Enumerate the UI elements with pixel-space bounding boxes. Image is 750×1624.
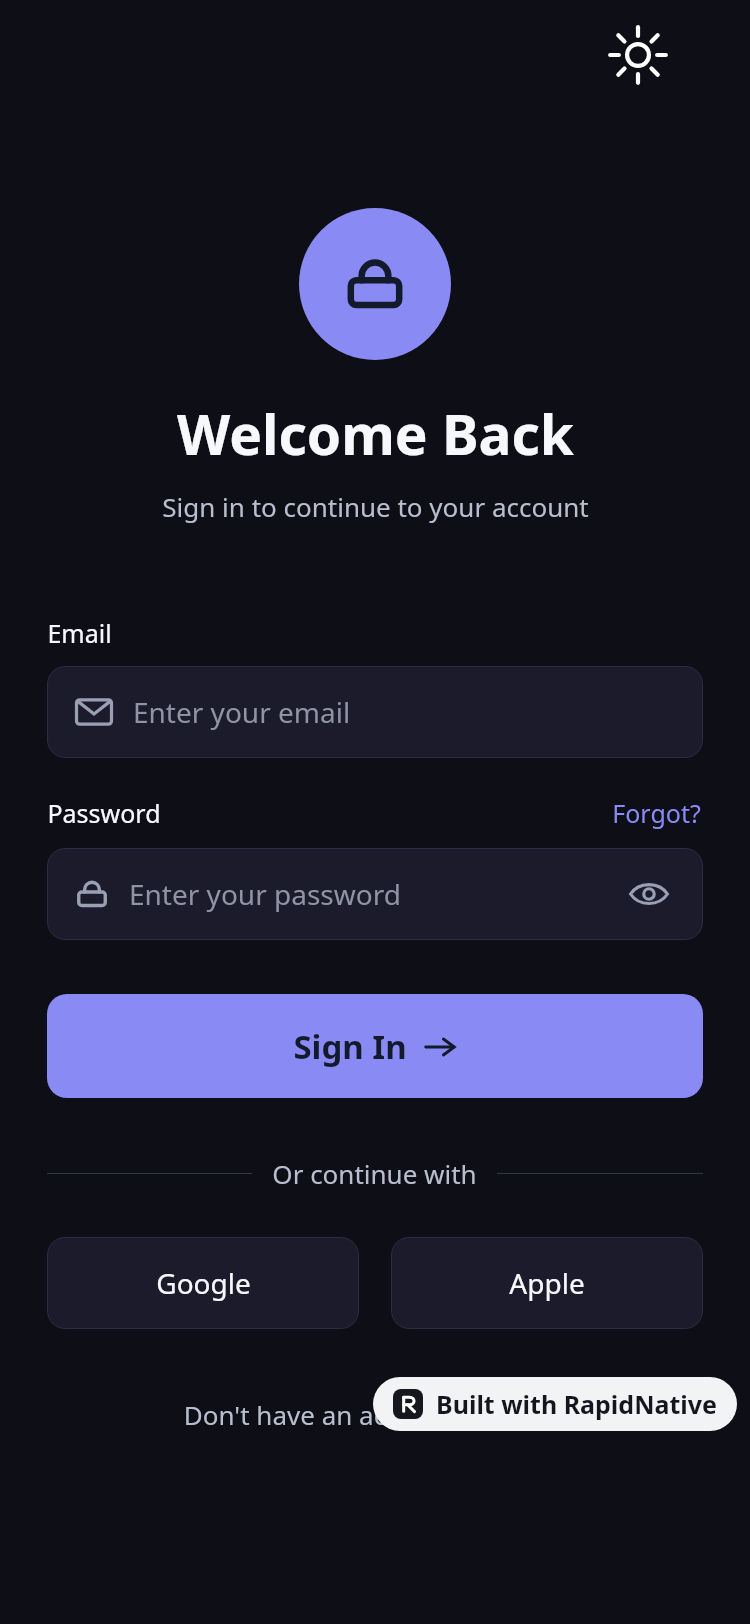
button[interactable]: Built with RapidNative (373, 1377, 737, 1431)
staticText: Sign Up (471, 1397, 570, 1432)
button[interactable]: Don't have an account? (176, 1395, 574, 1434)
button[interactable]: Apple (391, 1237, 703, 1329)
staticText: Sign in to continue to your account (162, 489, 589, 524)
staticText: Sign In (293, 1024, 407, 1069)
button[interactable]: Sign In (47, 994, 703, 1098)
button[interactable]: Google (47, 1237, 359, 1329)
staticText: Apple (509, 1264, 585, 1302)
staticText: Enter your email (133, 693, 351, 731)
button[interactable]: Forgot? (610, 794, 703, 832)
staticText: Password (47, 796, 161, 830)
button[interactable]: Show password (623, 868, 675, 920)
staticText: Don't have an account? (180, 1397, 471, 1432)
button[interactable]: Enter your email (47, 666, 703, 758)
staticText: Forgot? (612, 796, 701, 830)
staticText: Or continue with (272, 1156, 477, 1191)
staticText: Email (47, 616, 112, 650)
staticText: Welcome Back (177, 396, 574, 471)
button[interactable]: Toggle theme (600, 17, 676, 93)
staticText: Enter your password (129, 875, 401, 913)
button[interactable]: Enter your password (47, 848, 703, 940)
staticText: Google (156, 1264, 251, 1302)
staticText: Built with RapidNative (436, 1387, 717, 1421)
